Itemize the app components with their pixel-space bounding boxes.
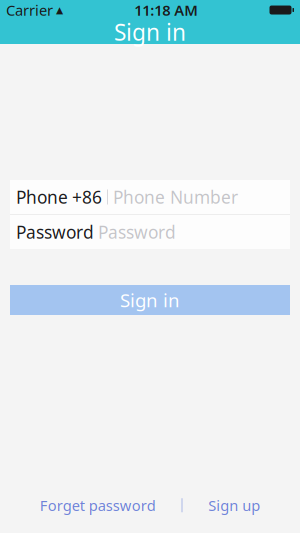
staticText: Sign up	[208, 495, 260, 515]
staticText: 11:18 AM	[134, 0, 198, 20]
staticText: Phone Number	[113, 185, 238, 208]
button[interactable]: Phone	[10, 180, 290, 214]
staticText: Forget password	[40, 495, 156, 515]
button[interactable]: Forget password	[32, 489, 164, 521]
button[interactable]: Sign up	[200, 489, 268, 521]
staticText: Sign in	[120, 288, 180, 312]
staticText: Phone	[16, 185, 68, 208]
staticText: +86	[72, 185, 102, 208]
button[interactable]: Sign in	[10, 285, 290, 315]
staticText: Password	[16, 220, 94, 243]
button[interactable]: Password	[10, 215, 290, 249]
staticText: Password	[98, 220, 176, 243]
staticText: ▲	[56, 5, 63, 15]
staticText: Carrier	[6, 0, 53, 20]
staticText: Sign in	[114, 17, 186, 47]
